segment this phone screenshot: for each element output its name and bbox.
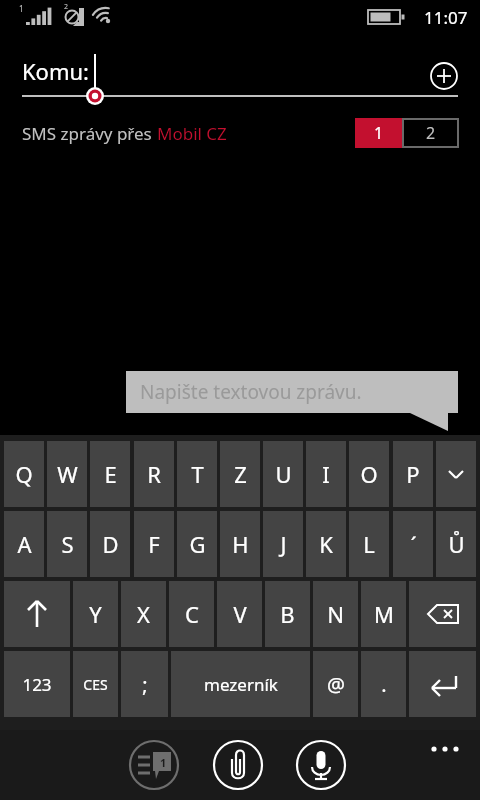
button[interactable]: Z xyxy=(220,441,260,507)
button[interactable]: Ů xyxy=(436,511,476,577)
staticText: G xyxy=(189,529,206,559)
staticText: 1 xyxy=(374,122,384,144)
button[interactable]: P xyxy=(393,441,433,507)
button[interactable]: O xyxy=(349,441,389,507)
button[interactable]: Attach xyxy=(212,739,264,791)
button[interactable]: Hide keyboard xyxy=(436,441,476,507)
button[interactable]: W xyxy=(47,441,87,507)
button[interactable]: C xyxy=(169,581,214,647)
staticText: mezerník xyxy=(204,673,278,696)
staticText: Q xyxy=(15,459,33,489)
button[interactable]: B xyxy=(265,581,310,647)
button[interactable]: 2 xyxy=(402,118,459,148)
staticText: K xyxy=(319,529,333,559)
button[interactable]: Voice input xyxy=(295,739,347,791)
button[interactable]: T xyxy=(177,441,217,507)
button[interactable]: Enter xyxy=(409,651,476,717)
staticText: O xyxy=(360,459,378,489)
button[interactable]: Backspace xyxy=(409,581,476,647)
button[interactable]: D xyxy=(90,511,130,577)
button[interactable]: More options xyxy=(420,734,470,764)
staticText: T xyxy=(191,459,204,489)
button[interactable]: X xyxy=(121,581,166,647)
staticText: D xyxy=(102,529,119,559)
staticText: P xyxy=(406,459,420,489)
button[interactable]: R xyxy=(134,441,174,507)
staticText: X xyxy=(137,599,150,629)
button[interactable]: 1 xyxy=(355,118,402,148)
staticText: Napište textovou zprávu. xyxy=(140,379,362,405)
staticText: N xyxy=(327,599,344,629)
button[interactable]: mezerník xyxy=(171,651,310,717)
staticText: U xyxy=(275,459,292,489)
staticText: Komu: xyxy=(22,56,89,86)
button[interactable]: K xyxy=(306,511,346,577)
staticText: S xyxy=(61,529,74,559)
staticText: J xyxy=(280,529,287,559)
button[interactable]: F xyxy=(134,511,174,577)
staticText: 2 xyxy=(64,2,69,12)
staticText: F xyxy=(148,529,160,559)
button[interactable]: A xyxy=(4,511,44,577)
staticText: Ů xyxy=(448,529,465,559)
staticText: @ xyxy=(327,671,345,698)
button[interactable]: Add recipient xyxy=(424,56,464,96)
staticText: SMS zprávy přes xyxy=(22,122,157,145)
button[interactable]: G xyxy=(177,511,217,577)
staticText: 2 xyxy=(426,122,436,144)
button[interactable]: I xyxy=(306,441,346,507)
button[interactable]: E xyxy=(90,441,130,507)
staticText: 11:07 xyxy=(424,6,468,29)
staticText: M xyxy=(374,599,394,629)
staticText: I xyxy=(322,459,330,489)
staticText: 1 xyxy=(19,3,24,14)
button[interactable]: ; xyxy=(121,651,168,717)
button[interactable]: M xyxy=(361,581,406,647)
button[interactable]: . xyxy=(361,651,406,717)
button[interactable]: CES xyxy=(73,651,118,717)
staticText: B xyxy=(280,599,295,629)
button[interactable]: J xyxy=(263,511,303,577)
staticText: W xyxy=(57,459,78,489)
staticText: C xyxy=(185,599,199,629)
button[interactable]: Q xyxy=(4,441,44,507)
button[interactable]: V xyxy=(217,581,262,647)
button[interactable]: Shift xyxy=(4,581,70,647)
button[interactable]: Send message xyxy=(128,739,180,791)
staticText: Z xyxy=(234,459,247,489)
button[interactable]: Mobil CZ xyxy=(157,122,227,145)
button[interactable]: U xyxy=(263,441,303,507)
staticText: E xyxy=(104,459,117,489)
button[interactable]: S xyxy=(47,511,87,577)
button[interactable]: 123 xyxy=(4,651,70,717)
button[interactable]: Y xyxy=(73,581,118,647)
staticText: . xyxy=(381,671,387,698)
button[interactable]: ´ xyxy=(393,511,433,577)
staticText: Y xyxy=(89,599,102,629)
button[interactable]: Napište textovou zprávu. xyxy=(126,371,458,431)
staticText: CES xyxy=(83,675,108,694)
button[interactable]: N xyxy=(313,581,358,647)
staticText: R xyxy=(147,459,161,489)
staticText: H xyxy=(232,529,249,559)
staticText: 1 xyxy=(160,755,167,770)
staticText: ; xyxy=(142,671,148,698)
staticText: A xyxy=(17,529,32,559)
button[interactable]: L xyxy=(349,511,389,577)
staticText: 123 xyxy=(22,673,52,696)
staticText: L xyxy=(363,529,375,559)
staticText: ´ xyxy=(410,529,417,559)
button[interactable]: H xyxy=(220,511,260,577)
button[interactable]: @ xyxy=(313,651,358,717)
staticText: V xyxy=(233,599,247,629)
button[interactable]: Komu: xyxy=(0,46,480,102)
